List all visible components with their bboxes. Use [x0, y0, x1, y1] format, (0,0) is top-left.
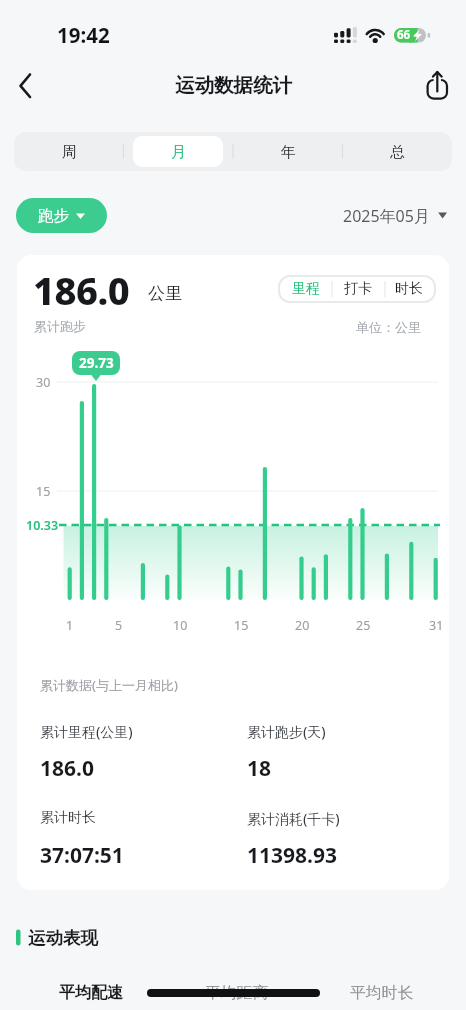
staticText: 1 — [66, 617, 74, 634]
staticText: 20 — [295, 617, 310, 634]
staticText: 66 — [397, 27, 411, 43]
staticText: 公里 — [148, 283, 182, 304]
staticText: 累计跑步 — [34, 318, 86, 334]
staticText: 186.0 — [33, 264, 130, 316]
button[interactable]: 时长 — [319, 259, 466, 319]
button[interactable] — [418, 66, 458, 104]
button[interactable] — [14, 66, 50, 104]
button[interactable]: 月 — [88, 122, 268, 182]
staticText: 打卡 — [344, 280, 372, 298]
staticText: 15 — [36, 483, 51, 500]
staticText: 平均距离 — [205, 983, 269, 1003]
staticText: 30 — [36, 374, 51, 391]
staticText: 月 — [171, 143, 186, 162]
button[interactable]: 跑步 — [16, 198, 107, 233]
staticText: 总 — [390, 143, 405, 162]
staticText: 29.73 — [79, 354, 114, 372]
button[interactable]: 平均距离 — [147, 963, 327, 1010]
staticText: 37:07:51 — [40, 841, 124, 870]
staticText: 平均配速 — [59, 983, 123, 1003]
staticText: 2025年05月 — [343, 205, 430, 227]
staticText: 15 — [234, 617, 249, 634]
staticText: 运动表现 — [28, 927, 98, 949]
staticText: 累计跑步(天) — [247, 722, 326, 741]
staticText: 累计里程(公里) — [40, 722, 133, 741]
staticText: 平均时长 — [350, 983, 414, 1003]
button[interactable]: 周 — [0, 122, 159, 182]
staticText: 累计时长 — [40, 809, 96, 827]
button[interactable]: 平均配速 — [1, 963, 181, 1010]
staticText: 18 — [247, 754, 272, 783]
staticText: 累计数据(与上一月相比) — [40, 676, 178, 694]
button[interactable] — [340, 198, 452, 234]
staticText: 时长 — [395, 280, 423, 298]
button[interactable]: 平均时长 — [292, 963, 466, 1010]
staticText: 186.0 — [40, 754, 94, 783]
staticText: 周 — [62, 143, 77, 162]
button[interactable]: 总 — [307, 122, 466, 182]
staticText: 单位：公里 — [356, 319, 421, 335]
button[interactable] — [133, 136, 223, 167]
staticText: 31 — [429, 617, 444, 634]
staticText: 5 — [115, 617, 123, 634]
staticText: 年 — [281, 143, 296, 162]
staticText: 10.33 — [26, 517, 59, 534]
button[interactable]: 打卡 — [268, 259, 448, 319]
staticText: 19:42 — [57, 21, 110, 49]
button[interactable]: 里程 — [216, 259, 396, 319]
staticText: 运动数据统计 — [175, 73, 292, 98]
staticText: 25 — [356, 617, 371, 634]
staticText: 里程 — [292, 280, 320, 298]
staticText: 跑步 — [38, 206, 69, 226]
button[interactable]: 年 — [198, 122, 378, 182]
staticText: 11398.93 — [247, 841, 337, 870]
staticText: 累计消耗(千卡) — [247, 809, 340, 828]
staticText: 10 — [173, 617, 188, 634]
